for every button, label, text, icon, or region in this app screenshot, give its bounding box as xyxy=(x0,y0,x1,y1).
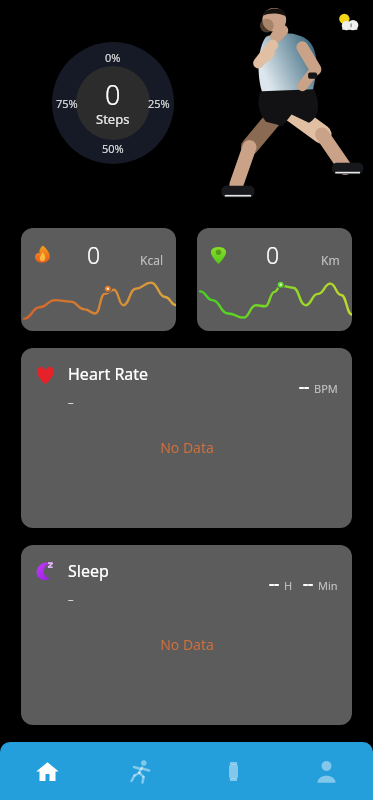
button[interactable]: Device xyxy=(187,742,280,800)
staticText: 25% xyxy=(148,96,170,111)
staticText: Heart Rate xyxy=(68,363,149,385)
button[interactable]: 0 xyxy=(52,42,174,164)
staticText: 0 xyxy=(87,239,101,270)
staticText: 75% xyxy=(56,96,78,111)
button[interactable]: Home xyxy=(0,742,94,800)
staticText: Km xyxy=(321,252,340,268)
staticText: – xyxy=(68,591,74,606)
staticText: -- xyxy=(303,572,314,594)
staticText: No Data xyxy=(160,438,214,457)
button[interactable]: Sleep xyxy=(21,545,352,725)
button[interactable]: Workout xyxy=(94,742,187,800)
staticText: Steps xyxy=(96,110,130,128)
staticText: No Data xyxy=(160,635,214,654)
staticText: H xyxy=(284,578,293,593)
button[interactable]: Distance xyxy=(197,228,352,331)
staticText: 50% xyxy=(102,141,124,156)
staticText: 0 xyxy=(105,76,121,113)
staticText: Min xyxy=(318,578,338,593)
staticText: -- xyxy=(299,375,310,397)
staticText: 0% xyxy=(105,50,121,65)
button[interactable]: Profile xyxy=(280,742,373,800)
staticText: 0 xyxy=(266,239,280,270)
button[interactable]: Heart Rate xyxy=(21,348,352,528)
staticText: Sleep xyxy=(68,560,109,582)
staticText: -- xyxy=(269,572,280,594)
staticText: – xyxy=(68,394,74,409)
staticText: BPM xyxy=(314,381,338,396)
staticText: Kcal xyxy=(140,252,164,268)
button[interactable]: Calories xyxy=(21,228,176,331)
button[interactable]: Weather xyxy=(335,10,361,36)
